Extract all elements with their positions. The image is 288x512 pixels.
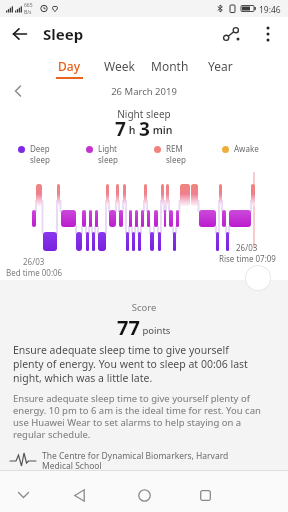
staticText: Score xyxy=(0,301,288,314)
button[interactable] xyxy=(246,266,270,290)
staticText: 665 B/s xyxy=(24,2,33,15)
button[interactable] xyxy=(132,483,156,507)
button[interactable]: Week xyxy=(96,51,142,80)
staticText: Sleep xyxy=(43,24,84,44)
button[interactable]: Month xyxy=(146,51,194,80)
staticText: h xyxy=(126,123,139,137)
button[interactable] xyxy=(67,483,91,507)
staticText: sleep xyxy=(98,154,118,165)
staticText: Month xyxy=(151,58,189,74)
staticText: 26 March 2019 xyxy=(0,85,288,98)
button[interactable]: Day xyxy=(48,51,90,80)
button[interactable] xyxy=(193,483,217,507)
staticText: Rise time 07:09 xyxy=(219,253,276,264)
button[interactable] xyxy=(256,22,280,46)
staticText: Deep xyxy=(30,143,50,154)
staticText: 26/03 xyxy=(236,242,258,253)
staticText: 7 xyxy=(115,116,126,140)
staticText: sleep xyxy=(30,154,50,165)
staticText: 77 xyxy=(117,314,140,341)
staticText: Week xyxy=(104,58,135,74)
staticText: Light xyxy=(98,143,118,154)
staticText: 3 xyxy=(139,116,150,140)
staticText: The Centre for Dynamical Biomarkers, Har… xyxy=(42,450,229,470)
button[interactable] xyxy=(219,22,243,46)
staticText: 26/03 xyxy=(23,256,45,267)
staticText: Ensure adequate sleep time to give yours… xyxy=(13,392,261,441)
button[interactable]: The Centre for Dynamical Biomarkers, Har… xyxy=(10,450,229,470)
button[interactable]: Year xyxy=(198,51,242,80)
button[interactable] xyxy=(10,84,26,98)
staticText: Night sleep xyxy=(0,107,288,121)
staticText: Year xyxy=(208,58,233,74)
staticText: Day xyxy=(58,58,80,74)
staticText: min xyxy=(150,123,173,137)
staticText: Awake xyxy=(234,143,259,154)
staticText: Bed time 00:06 xyxy=(6,267,63,278)
staticText: Ensure adequate sleep time to give yours… xyxy=(13,343,248,385)
button[interactable] xyxy=(8,22,32,46)
staticText: points xyxy=(140,324,171,337)
button[interactable] xyxy=(11,483,35,507)
staticText: sleep xyxy=(166,154,186,165)
staticText: REM xyxy=(166,143,183,154)
staticText: 19:46 xyxy=(259,4,281,16)
